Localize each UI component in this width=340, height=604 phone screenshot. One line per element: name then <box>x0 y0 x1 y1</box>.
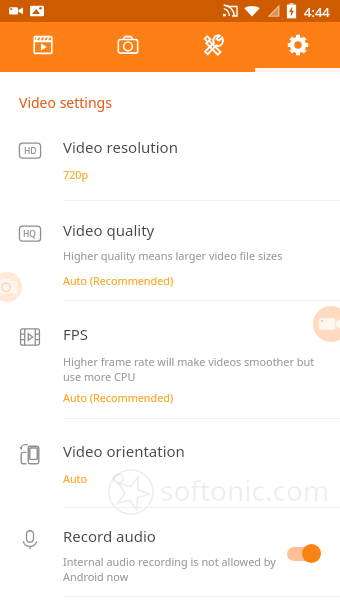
staticText: Video resolution <box>63 137 178 157</box>
button[interactable]: HQ <box>0 200 340 300</box>
staticText: Auto (Recommended) <box>63 390 174 405</box>
staticText: Higher frame rate will make videos smoot… <box>63 354 319 384</box>
staticText: Higher quality means larger video file s… <box>63 248 283 263</box>
staticText: softonic.com <box>160 471 330 509</box>
staticText: Internal audio recording is not allowed … <box>63 554 285 584</box>
button[interactable]: Videos <box>0 22 85 72</box>
button[interactable]: HD <box>0 111 340 200</box>
button[interactable]: Video orientation <box>0 418 340 507</box>
staticText: Auto (Recommended) <box>63 273 174 288</box>
staticText: Video quality <box>63 220 155 240</box>
staticText: Record audio <box>63 526 156 546</box>
button[interactable]: Record audio <box>0 507 340 596</box>
staticText: 720p <box>63 167 89 182</box>
staticText: Auto <box>63 471 88 486</box>
staticText: HQ <box>23 228 37 240</box>
staticText: Video orientation <box>63 441 185 461</box>
button[interactable]: Record audio toggle <box>287 544 323 564</box>
button[interactable]: FPS <box>0 300 340 418</box>
staticText: 4:44 <box>304 3 330 21</box>
staticText: HD <box>24 145 37 157</box>
staticText: Video settings <box>19 93 112 112</box>
button[interactable]: Camera <box>85 22 170 72</box>
staticText: FPS <box>63 324 89 344</box>
button[interactable]: Settings <box>255 22 340 72</box>
button[interactable]: Tools <box>170 22 255 72</box>
